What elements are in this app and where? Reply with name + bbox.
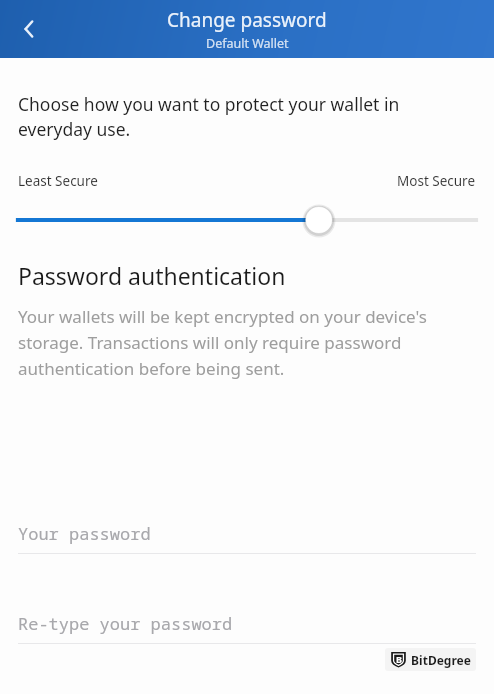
staticText: B xyxy=(396,653,402,665)
staticText: Password authentication xyxy=(18,260,286,291)
staticText: Most Secure xyxy=(397,172,476,190)
button[interactable]: Security level slider xyxy=(18,204,476,236)
button[interactable]: Your password xyxy=(18,522,476,554)
staticText: Choose how you want to protect your wall… xyxy=(18,92,476,142)
button[interactable]: Re-type your password xyxy=(18,612,476,644)
staticText: BitDegree xyxy=(411,652,471,668)
staticText: Your password xyxy=(18,522,151,545)
button[interactable]: Back xyxy=(6,5,54,53)
staticText: Your wallets will be kept encrypted on y… xyxy=(18,305,476,380)
staticText: Least Secure xyxy=(18,172,98,190)
staticText: Re-type your password xyxy=(18,612,233,635)
staticText: Default Wallet xyxy=(206,35,289,52)
staticText: Change password xyxy=(167,7,327,33)
